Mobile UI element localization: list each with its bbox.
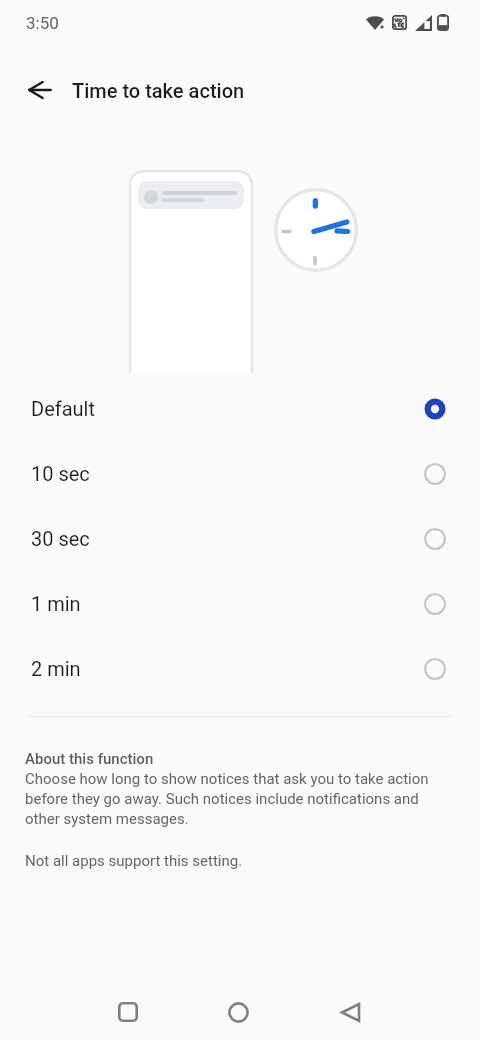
button[interactable]: Default [0,376,480,441]
staticText: 10 sec [31,462,90,485]
staticText: 2 min [31,657,81,680]
button[interactable]: 2 min [0,636,480,701]
staticText: 30 sec [31,527,90,550]
staticText: Default [31,397,95,420]
button[interactable]: Recent apps [96,980,160,1040]
staticText: 3:50 [26,13,59,33]
button[interactable]: Back [318,980,382,1040]
staticText: 1 min [31,592,81,615]
button[interactable]: 1 min [0,571,480,636]
button[interactable]: Navigate up [16,66,64,114]
staticText: Choose how long to show notices that ask… [25,770,445,827]
staticText: Not all apps support this setting. [25,852,243,870]
button[interactable]: Home [206,980,270,1040]
staticText: Time to take action [72,79,245,102]
button[interactable]: 10 sec [0,441,480,506]
button[interactable]: 30 sec [0,506,480,571]
staticText: About this function [25,750,154,768]
